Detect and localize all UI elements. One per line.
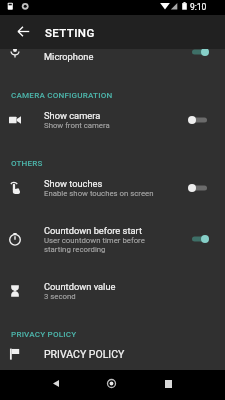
staticText: Show front camera [44,121,110,130]
button[interactable]: Countdown value [0,268,225,313]
button[interactable]: Back [7,15,39,47]
button[interactable]: Back [43,368,69,398]
staticText: 3 second [44,292,76,301]
button[interactable]: Microphone [0,34,225,70]
staticText: PRIVACY POLICY [11,329,77,338]
staticText: Enable show touches on screen [44,189,154,198]
staticText: PRIVACY POLICY [44,348,125,360]
staticText: SETTING [45,26,95,39]
staticText: User countdown timer before [44,236,145,245]
staticText: Show camera [44,110,101,121]
staticText: Show touches [44,178,103,189]
staticText: Countdown value [44,281,116,292]
staticText: starting recording [44,245,106,254]
button[interactable]: Show camera [0,97,225,142]
staticText: CAMERA CONFIGURATION [11,90,113,99]
button[interactable]: Home [98,368,124,398]
button[interactable]: Countdown before start [0,210,225,268]
staticText: Countdown before start [44,225,142,236]
button[interactable]: Show touches [0,165,225,210]
button[interactable]: PRIVACY POLICY [0,336,225,372]
staticText: OTHERS [11,158,43,167]
button[interactable]: Recents [155,369,181,399]
staticText: Microphone [44,51,94,62]
staticText: 9:10 [190,2,207,12]
